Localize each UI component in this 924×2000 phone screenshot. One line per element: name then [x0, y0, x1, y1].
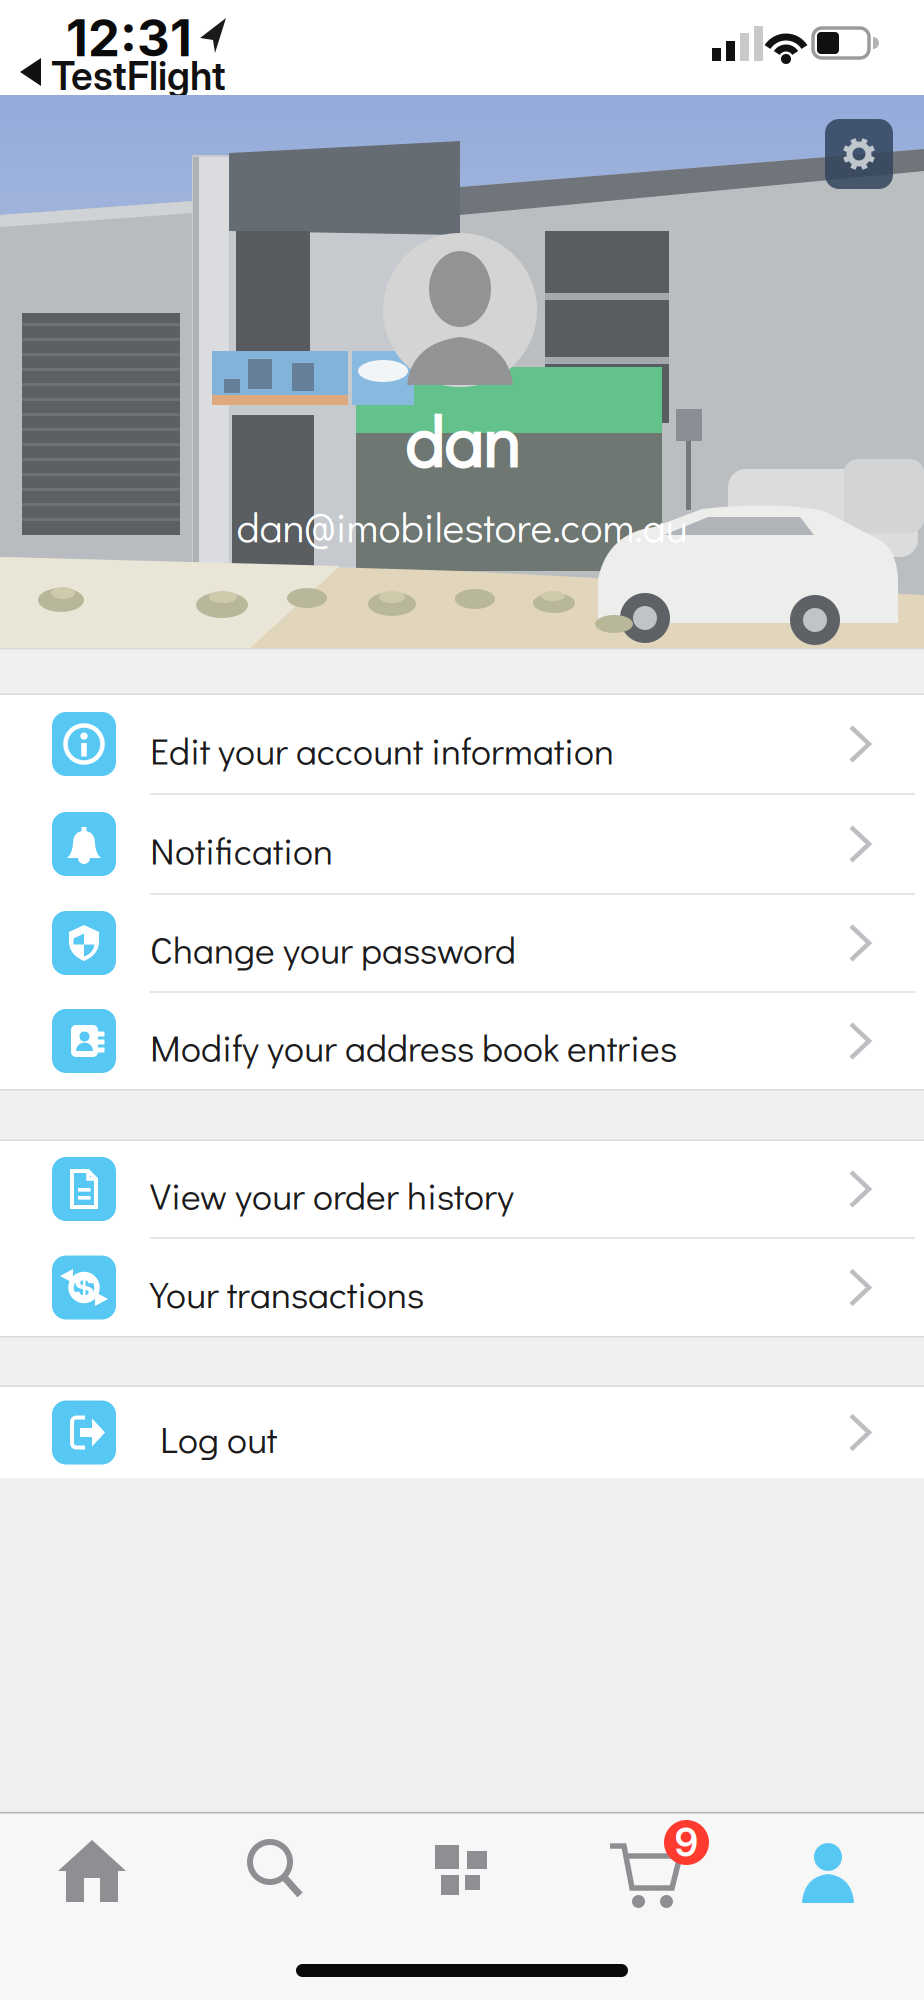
- button[interactable]: Home: [32, 1812, 924, 2000]
- button[interactable]: Edit your account information: [0, 695, 924, 793]
- button[interactable]: Account: [768, 1812, 924, 2000]
- button[interactable]: Cart: [580, 1812, 924, 2000]
- button[interactable]: $: [0, 1239, 924, 1336]
- staticText: $: [73, 1268, 94, 1307]
- staticText: Edit your account information: [150, 725, 614, 774]
- staticText: dan: [404, 395, 519, 486]
- button[interactable]: Settings: [825, 119, 893, 189]
- button[interactable]: Change your password: [0, 895, 924, 991]
- staticText: View your order history: [150, 1170, 514, 1219]
- staticText: Log out: [160, 1414, 277, 1463]
- button[interactable]: Categories: [410, 1812, 924, 2000]
- staticText: Change your password: [150, 924, 516, 973]
- button[interactable]: Log out: [0, 1387, 924, 1478]
- staticText: dan@imobilestore.com.au: [236, 499, 687, 553]
- staticText: TestFlight: [51, 53, 226, 99]
- button[interactable]: Notification: [0, 795, 924, 893]
- button[interactable]: Search: [216, 1812, 924, 2000]
- staticText: Your transactions: [150, 1269, 424, 1318]
- staticText: Modify your address book entries: [150, 1022, 677, 1071]
- staticText: 9: [674, 1820, 698, 1865]
- staticText: Notification: [150, 825, 333, 874]
- staticText: 12:31: [66, 8, 192, 68]
- button[interactable]: Modify your address book entries: [0, 993, 924, 1089]
- button[interactable]: View your order history: [0, 1141, 924, 1237]
